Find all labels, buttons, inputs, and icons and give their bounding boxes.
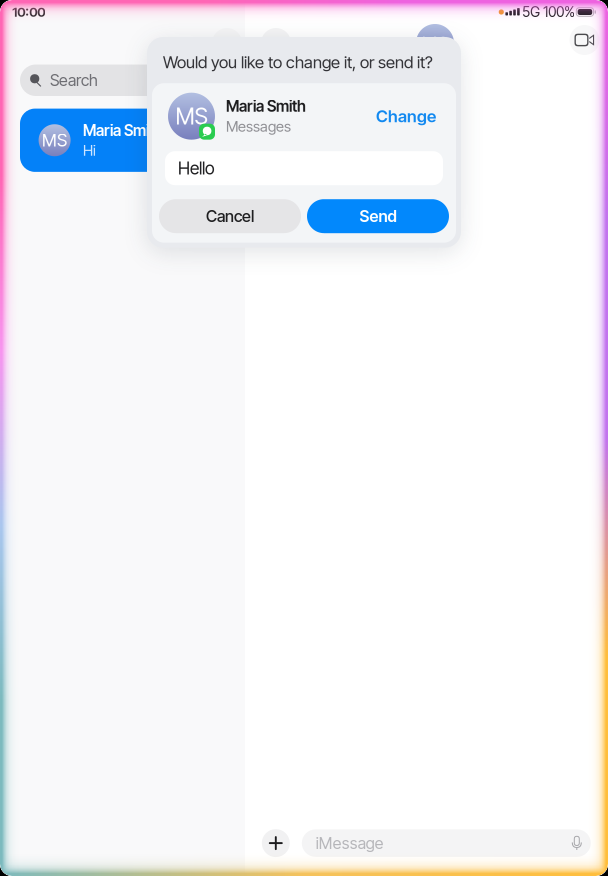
staticText: MS (421, 32, 448, 54)
button[interactable]: Change (370, 101, 442, 131)
staticText: MS (175, 102, 207, 130)
staticText: Cancel (206, 206, 254, 226)
button[interactable]: MS (0, 109, 245, 172)
button[interactable]: Search (0, 64, 245, 96)
staticText: 5G 100% (522, 3, 575, 20)
staticText: Hi (83, 142, 96, 159)
staticText: Would you like to change it, or send it? (163, 52, 433, 72)
staticText: Maria Smith (83, 121, 163, 140)
button[interactable]: Cancel (159, 199, 301, 233)
button[interactable]: More (212, 28, 242, 58)
staticText: MS (42, 130, 67, 151)
button[interactable]: FaceTime (569, 25, 599, 55)
staticText: Hello (178, 158, 215, 179)
staticText: Change (376, 106, 436, 126)
button[interactable]: Compose (261, 28, 291, 58)
staticText: Search (50, 71, 98, 90)
staticText: 10:00 (12, 4, 45, 20)
staticText: Send (359, 206, 396, 226)
staticText: Maria Smith (226, 97, 306, 116)
staticText: iMessage (316, 833, 384, 853)
button[interactable]: Add attachment (262, 829, 290, 857)
button[interactable]: Send (307, 199, 449, 233)
staticText: Messages (226, 118, 291, 135)
